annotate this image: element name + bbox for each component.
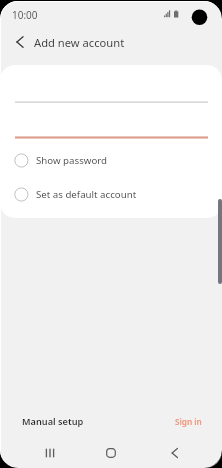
staticText: 10:00: [12, 8, 38, 22]
button[interactable]: Manual setup: [14, 409, 92, 434]
button[interactable]: Sign in: [167, 410, 210, 433]
button[interactable]: Back: [154, 437, 194, 468]
staticText: Sign in: [175, 416, 202, 427]
button[interactable]: Show password: [10, 148, 108, 173]
button[interactable]: Recent apps: [30, 437, 70, 468]
staticText: Set as default account: [36, 188, 137, 201]
staticText: Show password: [36, 154, 108, 167]
button[interactable]: Back: [8, 31, 30, 53]
button[interactable]: Home: [91, 437, 131, 468]
button[interactable]: Set as default account: [10, 182, 137, 207]
staticText: Add new account: [34, 35, 125, 50]
staticText: Manual setup: [22, 415, 84, 428]
